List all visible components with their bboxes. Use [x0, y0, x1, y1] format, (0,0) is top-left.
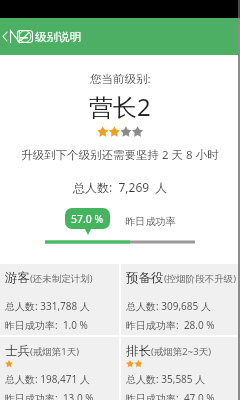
staticText: 昨日成功率: 47.0 %	[126, 391, 215, 400]
staticText: 营长2	[89, 90, 151, 123]
staticText: 总人数: 198,471 人	[5, 372, 90, 386]
staticText: 57.0 %	[71, 212, 104, 226]
staticText: 昨日成功率: 1.0 %	[5, 318, 88, 332]
staticText: 昨日成功率	[125, 215, 176, 228]
staticText: 预备役	[126, 270, 164, 286]
button[interactable]: 预备役	[121, 264, 240, 335]
staticText: 游客	[5, 270, 30, 286]
staticText: 您当前级别:	[90, 71, 151, 87]
staticText: 级别说明	[35, 30, 81, 44]
staticText: 总人数: 7,269 人	[73, 179, 168, 195]
staticText: 士兵	[5, 343, 30, 359]
button[interactable]: Back	[0, 18, 10, 55]
staticText: (控烟阶段不升级)	[164, 272, 237, 285]
staticText: 昨日成功率: 28.0 %	[126, 318, 215, 332]
staticText: 升级到下个级别还需要坚持 2 天 8 小时	[21, 147, 219, 163]
staticText: 昨日成功率: 13.0 %	[5, 391, 94, 400]
button[interactable]: 游客	[0, 264, 119, 335]
staticText: (戒烟第1天)	[30, 345, 80, 358]
button[interactable]: 士兵	[0, 337, 119, 400]
staticText: (戒烟第2~3天)	[151, 345, 212, 358]
staticText: 总人数: 331,788 人	[5, 299, 90, 313]
staticText: 排长	[126, 343, 151, 359]
staticText: 总人数: 35,585 人	[126, 372, 206, 386]
button[interactable]: 排长	[121, 337, 240, 400]
staticText: (还未制定计划)	[30, 272, 93, 285]
staticText: 总人数: 309,685 人	[126, 299, 211, 313]
